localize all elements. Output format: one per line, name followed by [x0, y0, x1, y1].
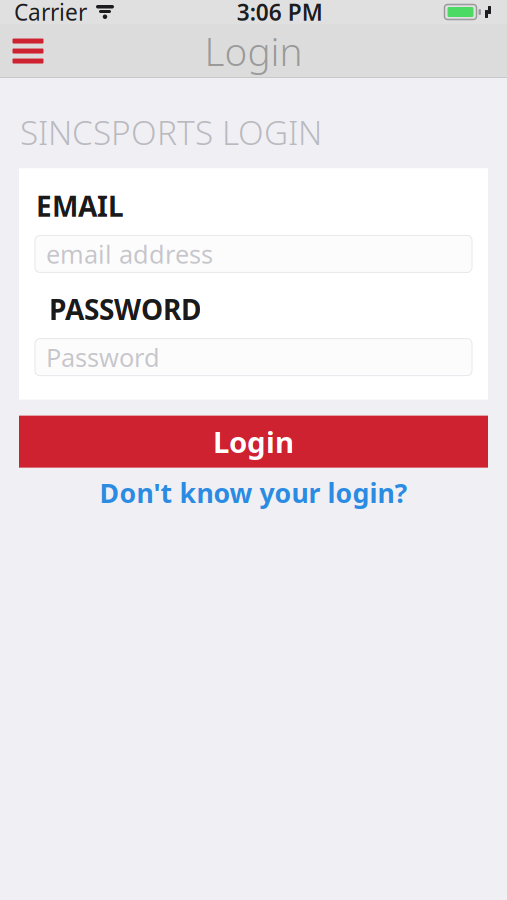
staticText: EMAIL	[36, 187, 124, 224]
staticText: Don't know your login?	[99, 475, 407, 510]
button[interactable]: Don't know your login?	[19, 471, 488, 515]
button[interactable]: Menu	[0, 24, 56, 78]
button[interactable]: Login	[19, 416, 488, 468]
staticText: Login	[213, 422, 294, 461]
staticText: SINCSPORTS LOGIN	[20, 110, 322, 154]
staticText: email address	[46, 237, 213, 271]
staticText: Carrier	[14, 0, 87, 27]
staticText: PASSWORD	[49, 290, 201, 328]
staticText: 3:06 PM	[237, 0, 323, 27]
staticText: Login	[204, 25, 302, 77]
staticText: Password	[46, 340, 160, 374]
